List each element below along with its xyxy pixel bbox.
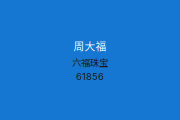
staticText: 周大福 [73,38,106,53]
staticText: 六福珠宝 [72,55,108,69]
staticText: 61856 [76,71,104,82]
